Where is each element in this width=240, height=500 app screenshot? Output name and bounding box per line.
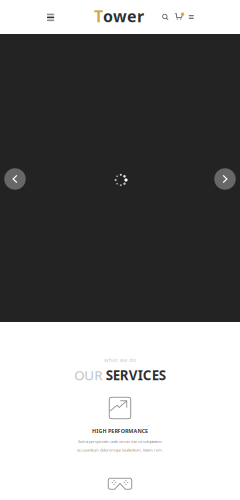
staticText: OUR xyxy=(74,366,102,384)
staticText: ower xyxy=(103,5,144,27)
staticText: HIGH PERFORMANCE xyxy=(92,427,148,435)
staticText: accusantium doloremque laudantium, totam… xyxy=(77,447,163,453)
button[interactable]: More xyxy=(185,10,198,23)
button[interactable]: Search xyxy=(159,10,172,23)
staticText: T xyxy=(94,5,103,27)
staticText: Sed ut perspiciatis unde omnis iste sit … xyxy=(78,439,162,444)
button[interactable]: Previous slide xyxy=(4,168,26,190)
button[interactable]: Menu xyxy=(42,8,60,26)
staticText: SERVICES xyxy=(106,366,166,384)
button[interactable]: T xyxy=(94,5,144,27)
button[interactable]: Shopping cart xyxy=(172,10,186,24)
staticText: what we do xyxy=(104,356,136,364)
button[interactable]: Next slide xyxy=(214,168,236,190)
